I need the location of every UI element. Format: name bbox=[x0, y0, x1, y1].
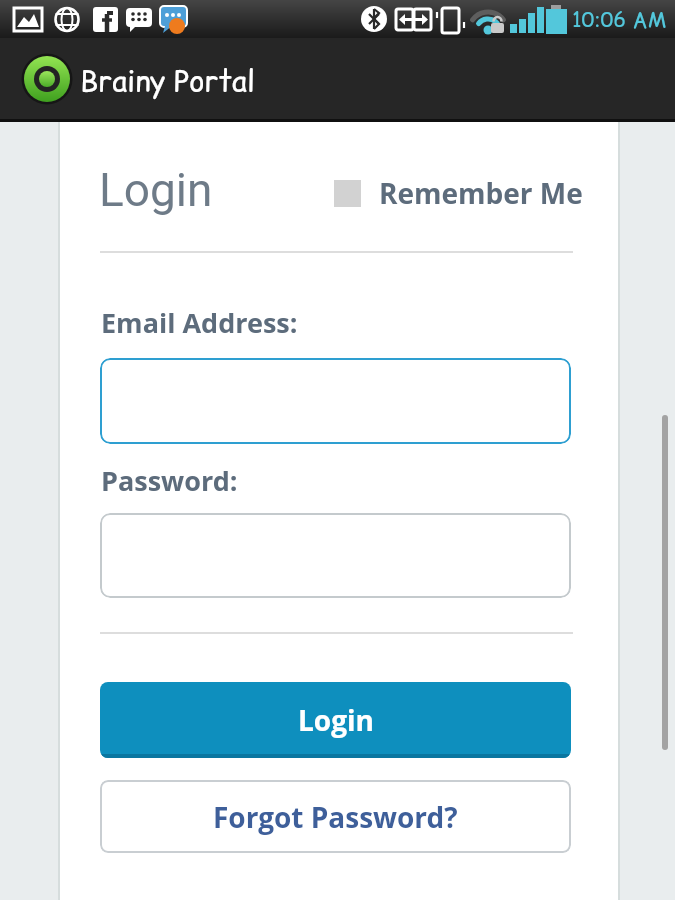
staticText: Remember Me bbox=[379, 174, 583, 212]
staticText: Forgot Password? bbox=[213, 798, 458, 836]
staticText: Login bbox=[298, 701, 374, 739]
staticText: Password: bbox=[101, 462, 238, 499]
staticText: Login bbox=[99, 163, 213, 217]
button[interactable]: Login bbox=[100, 682, 571, 758]
staticText: Brainy Portal bbox=[80, 60, 255, 100]
button[interactable]: Forgot Password? bbox=[100, 780, 571, 853]
staticText: Email Address: bbox=[101, 304, 298, 341]
staticText: 10:06 AM bbox=[572, 5, 667, 34]
button[interactable]: Remember Me bbox=[334, 174, 583, 212]
button[interactable] bbox=[100, 513, 571, 598]
button[interactable] bbox=[100, 358, 571, 444]
